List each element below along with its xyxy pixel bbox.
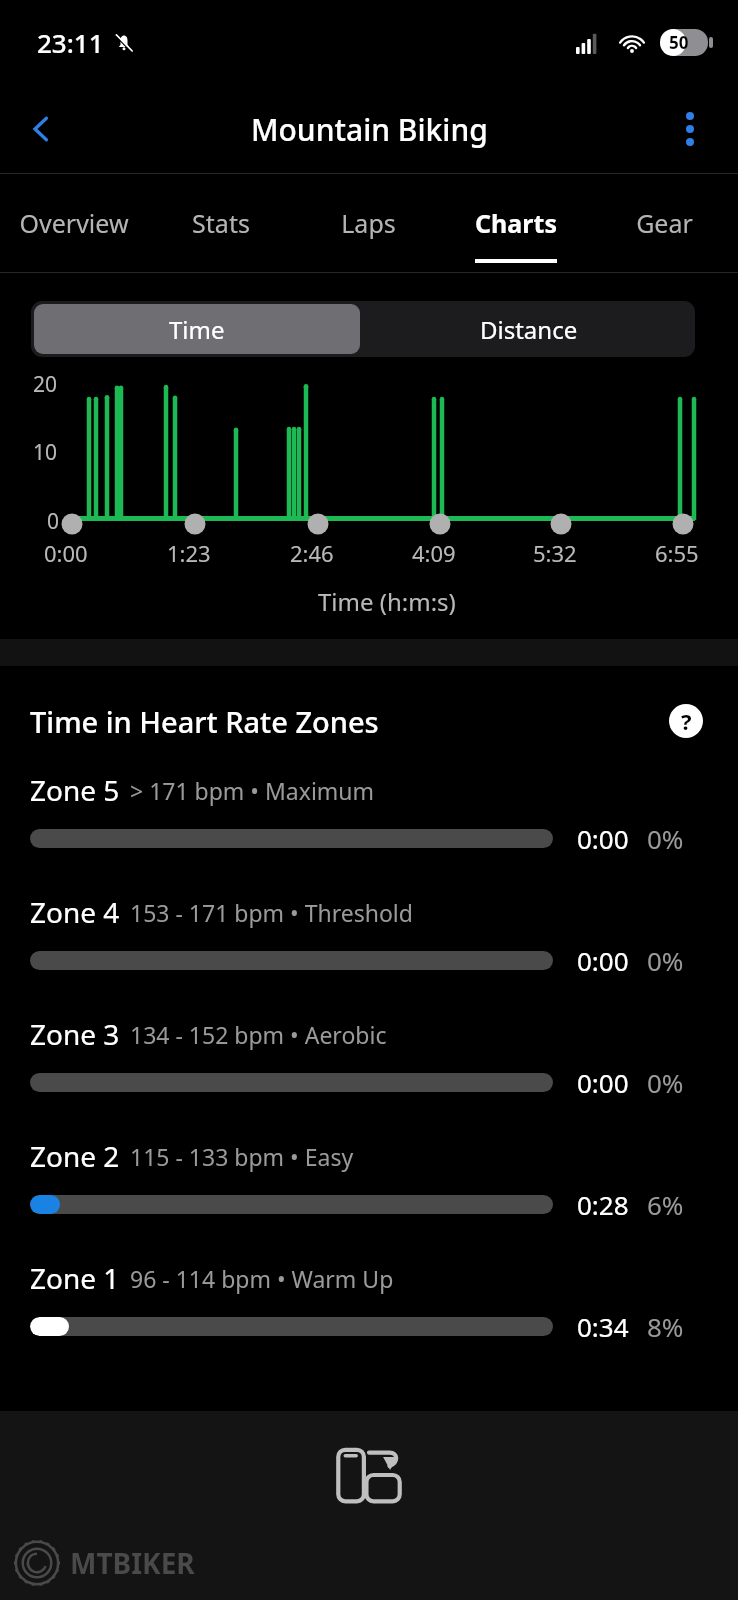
staticText: 10 bbox=[33, 438, 58, 467]
staticText: Mountain Biking bbox=[251, 109, 488, 150]
button[interactable]: Gear bbox=[590, 173, 738, 273]
button[interactable]: Time bbox=[34, 304, 360, 354]
staticText: 0:28 bbox=[577, 1187, 629, 1222]
staticText: 6:55 bbox=[655, 538, 699, 568]
staticText: Stats bbox=[192, 206, 250, 240]
staticText: 6% bbox=[647, 1187, 684, 1222]
staticText: 2:46 bbox=[290, 538, 334, 568]
staticText: 0% bbox=[647, 943, 684, 978]
staticText: 23:11 bbox=[37, 25, 104, 60]
staticText: 0:00 bbox=[577, 821, 629, 856]
staticText: 50 bbox=[669, 31, 689, 54]
staticText: 134 - 152 bpm • Aerobic bbox=[130, 1019, 387, 1050]
staticText: 0:34 bbox=[577, 1309, 629, 1344]
button[interactable]: Rotate screen bbox=[327, 1433, 411, 1517]
button[interactable]: Stats bbox=[147, 173, 294, 273]
staticText: 0% bbox=[647, 821, 684, 856]
staticText: Time in Heart Rate Zones bbox=[30, 702, 379, 741]
staticText: Zone 2 bbox=[30, 1137, 120, 1175]
staticText: Charts bbox=[475, 206, 557, 240]
button[interactable]: Help bbox=[664, 699, 708, 743]
staticText: Gear bbox=[636, 206, 693, 240]
button[interactable]: Back bbox=[12, 100, 70, 158]
staticText: 8% bbox=[647, 1309, 684, 1344]
staticText: > 171 bpm • Maximum bbox=[130, 775, 375, 806]
button[interactable]: More options bbox=[662, 101, 718, 157]
button[interactable]: Zone 2 bbox=[0, 1137, 738, 1259]
button[interactable]: Charts bbox=[442, 173, 590, 273]
staticText: Time (h:m:s) bbox=[318, 585, 456, 618]
staticText: Distance bbox=[480, 313, 578, 346]
staticText: Zone 4 bbox=[30, 893, 120, 931]
staticText: 96 - 114 bpm • Warm Up bbox=[130, 1263, 394, 1294]
staticText: 0:00 bbox=[577, 1065, 629, 1100]
staticText: 115 - 133 bpm • Easy bbox=[130, 1141, 354, 1172]
button[interactable]: Zone 1 bbox=[0, 1259, 738, 1381]
button[interactable]: Laps bbox=[294, 173, 442, 273]
button[interactable]: Zone 5 bbox=[0, 771, 738, 893]
staticText: ? bbox=[681, 706, 692, 736]
staticText: 0% bbox=[647, 1065, 684, 1100]
button[interactable]: Zone 4 bbox=[0, 893, 738, 1015]
staticText: Laps bbox=[341, 206, 396, 240]
staticText: 0:00 bbox=[44, 538, 88, 568]
button[interactable]: Distance bbox=[363, 301, 695, 357]
staticText: Zone 5 bbox=[30, 771, 120, 809]
button[interactable]: Overview bbox=[0, 173, 147, 273]
staticText: 0:00 bbox=[577, 943, 629, 978]
staticText: 0 bbox=[47, 507, 60, 536]
staticText: 20 bbox=[33, 370, 58, 399]
staticText: MTBIKER bbox=[70, 1544, 195, 1582]
staticText: 5:32 bbox=[533, 538, 577, 568]
staticText: 1:23 bbox=[167, 538, 211, 568]
staticText: Zone 3 bbox=[30, 1015, 120, 1053]
staticText: Overview bbox=[19, 206, 129, 240]
button[interactable]: Zone 3 bbox=[0, 1015, 738, 1137]
staticText: Time bbox=[169, 313, 225, 346]
staticText: Zone 1 bbox=[30, 1259, 120, 1297]
staticText: 4:09 bbox=[412, 538, 456, 568]
staticText: 153 - 171 bpm • Threshold bbox=[130, 897, 413, 928]
